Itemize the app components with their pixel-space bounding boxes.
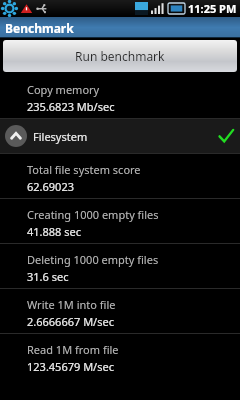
staticText: Creating 1000 empty files — [27, 207, 159, 222]
staticText: 2.6666667 M/sec — [27, 314, 114, 329]
staticText: Benchmark — [5, 20, 74, 36]
staticText: 31.6 sec — [27, 269, 69, 284]
staticText: 123.45679 M/sec — [27, 359, 114, 374]
other: Collapse Filesystem — [5, 125, 27, 147]
button[interactable]: Deleting 1000 empty files — [0, 244, 240, 288]
button[interactable]: Collapse Filesystem — [0, 119, 240, 153]
staticText: Run benchmark — [75, 48, 165, 64]
staticText: 11:25 PM — [188, 1, 237, 16]
staticText: 235.6823 Mb/sec — [27, 99, 115, 114]
button[interactable]: Copy memory — [0, 74, 240, 118]
other: Completed — [217, 127, 235, 145]
button[interactable]: Read 1M from file — [0, 334, 240, 378]
button[interactable]: Creating 1000 empty files — [0, 199, 240, 243]
staticText: Copy memory — [27, 82, 100, 97]
staticText: Read 1M from file — [27, 342, 119, 357]
staticText: 41.888 sec — [27, 224, 82, 239]
button[interactable]: Total file system score — [0, 154, 240, 198]
staticText: Deleting 1000 empty files — [27, 252, 159, 267]
staticText: 62.69023 — [27, 179, 74, 194]
staticText: Filesystem — [33, 129, 88, 144]
button[interactable]: Write 1M into file — [0, 289, 240, 333]
staticText: Write 1M into file — [27, 297, 116, 312]
button[interactable]: Run benchmark — [3, 40, 237, 72]
staticText: Total file system score — [27, 162, 141, 177]
